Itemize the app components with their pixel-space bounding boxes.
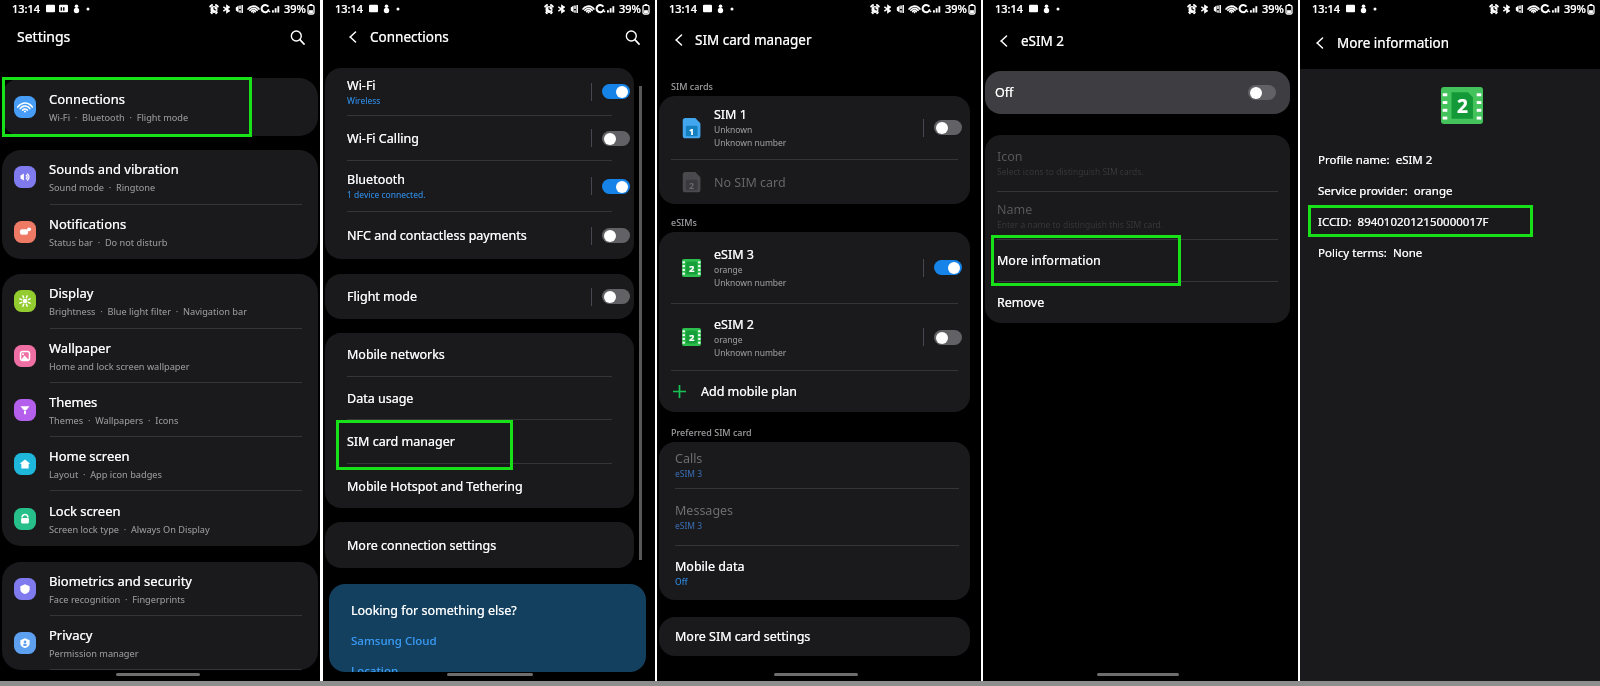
staticText: Brightness · Blue light filter · Navigat… <box>49 305 247 318</box>
button[interactable]: 2 <box>659 160 970 204</box>
staticText: 13:14 <box>335 1 364 16</box>
staticText: Home and lock screen wallpaper <box>49 360 190 373</box>
button[interactable]: 1 <box>659 96 970 160</box>
staticText: Samsung Cloud <box>351 633 437 649</box>
button[interactable]: Toggle <box>602 84 630 99</box>
button[interactable]: Messages <box>659 489 970 546</box>
button[interactable]: Wi-Fi <box>325 68 634 116</box>
staticText: Profile name: eSIM 2 <box>1318 152 1433 168</box>
staticText: 2 <box>689 262 695 275</box>
button[interactable]: More SIM card settings <box>659 617 970 656</box>
staticText: Themes · Wallpapers · Icons <box>49 414 179 427</box>
staticText: Themes <box>49 393 98 411</box>
button[interactable]: Wallpaper <box>2 329 318 383</box>
staticText: 1 <box>689 125 695 137</box>
button[interactable]: Toggle <box>602 228 630 243</box>
staticText: Home screen <box>49 447 130 465</box>
staticText: Layout · App icon badges <box>49 468 162 481</box>
button[interactable]: Lock screen <box>2 491 318 546</box>
staticText: Unknown number <box>714 347 787 359</box>
button[interactable]: Search <box>619 24 645 50</box>
button[interactable]: Toggle <box>934 120 962 135</box>
button[interactable]: Sounds and vibration <box>2 150 318 205</box>
staticText: 2 <box>1457 93 1468 119</box>
staticText: 1 device connected. <box>347 189 426 201</box>
staticText: 2 <box>689 179 695 191</box>
button[interactable]: Navigate up <box>667 28 691 52</box>
button[interactable]: Privacy <box>2 616 318 670</box>
button[interactable]: Add mobile plan <box>659 371 970 412</box>
button[interactable]: Toggle <box>602 179 630 194</box>
button[interactable]: Home screen <box>2 437 318 491</box>
button[interactable]: Wi-Fi Calling <box>325 116 634 161</box>
staticText: Status bar · Do not disturb <box>49 236 168 249</box>
staticText: More SIM card settings <box>675 628 811 645</box>
button[interactable]: Navigate up <box>992 29 1016 53</box>
staticText: Enter a name to distinguish this SIM car… <box>997 219 1164 231</box>
staticText: 39% <box>1262 1 1284 16</box>
button[interactable]: Biometrics and security <box>2 562 318 616</box>
button[interactable]: Notifications <box>2 205 318 259</box>
staticText: Settings <box>17 27 71 46</box>
button[interactable]: 2 <box>659 232 970 304</box>
button[interactable]: Search <box>284 24 310 50</box>
button[interactable]: Location <box>351 663 399 672</box>
button[interactable]: 2 <box>659 304 970 371</box>
button[interactable]: NFC and contactless payments <box>325 212 634 259</box>
button[interactable]: Bluetooth <box>325 161 634 212</box>
button[interactable]: Toggle <box>1248 85 1276 100</box>
button[interactable]: Mobile Hotspot and Tethering <box>325 464 634 508</box>
staticText: SIM card manager <box>695 31 812 49</box>
staticText: Mobile networks <box>347 346 445 363</box>
button[interactable]: Connections <box>2 78 318 136</box>
button[interactable]: Toggle <box>934 330 962 345</box>
button[interactable]: Toggle <box>602 131 630 146</box>
button[interactable]: Samsung Cloud <box>351 633 437 649</box>
staticText: Flight mode <box>347 288 418 305</box>
button[interactable]: Icon <box>985 135 1290 192</box>
button[interactable]: Calls <box>659 442 970 489</box>
staticText: Face recognition · Fingerprints <box>49 593 185 606</box>
staticText: More information <box>1337 34 1450 52</box>
staticText: Preferred SIM card <box>671 426 752 438</box>
button[interactable]: Name <box>985 192 1290 240</box>
staticText: Display <box>49 284 94 302</box>
button[interactable]: More information <box>985 240 1290 282</box>
staticText: 39% <box>284 1 306 16</box>
staticText: eSIM 3 <box>714 246 754 263</box>
staticText: Messages <box>675 502 734 519</box>
button[interactable]: Display <box>2 274 318 329</box>
staticText: Sounds and vibration <box>49 160 179 178</box>
staticText: 13:14 <box>995 1 1024 16</box>
button[interactable]: More connection settings <box>325 522 634 568</box>
staticText: ICCID: 8940102012150000017F <box>1318 214 1489 230</box>
button[interactable]: Themes <box>2 383 318 437</box>
button[interactable]: Toggle <box>934 260 962 275</box>
staticText: orange <box>714 264 743 276</box>
button[interactable]: Mobile networks <box>325 333 634 377</box>
button[interactable]: Navigate up <box>341 25 365 49</box>
staticText: 13:14 <box>12 1 41 16</box>
staticText: Select icons to distinguish SIM cards. <box>997 166 1144 178</box>
staticText: 2 <box>689 331 695 344</box>
staticText: More connection settings <box>347 537 497 554</box>
button[interactable]: Navigate up <box>1308 31 1332 55</box>
staticText: Name <box>997 201 1033 218</box>
button[interactable]: Mobile data <box>659 546 970 600</box>
staticText: eSIM 3 <box>675 520 703 532</box>
staticText: Biometrics and security <box>49 572 193 590</box>
button[interactable]: Flight mode <box>325 274 634 319</box>
staticText: Wireless <box>347 95 381 107</box>
button[interactable]: SIM card manager <box>325 420 634 464</box>
button[interactable]: Remove <box>985 282 1290 323</box>
staticText: Add mobile plan <box>701 383 797 400</box>
staticText: 39% <box>1564 1 1586 16</box>
staticText: Unknown number <box>714 137 787 149</box>
staticText: Policy terms: None <box>1318 245 1423 261</box>
staticText: Lock screen <box>49 502 121 520</box>
button[interactable]: Off <box>985 71 1290 114</box>
button[interactable]: Data usage <box>325 377 634 420</box>
staticText: Permission manager <box>49 647 139 660</box>
button[interactable]: Toggle <box>602 289 630 304</box>
staticText: Connections <box>370 28 449 46</box>
